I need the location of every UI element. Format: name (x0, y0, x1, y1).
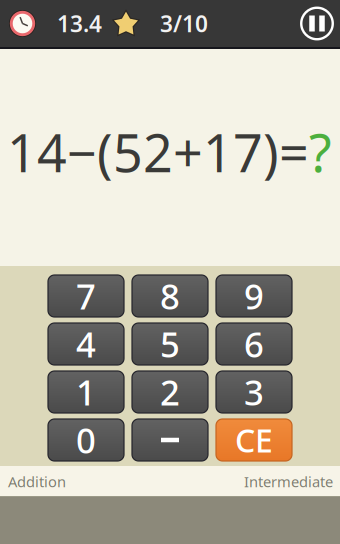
staticText: 8 (160, 273, 180, 319)
button[interactable]: 3 (216, 371, 292, 413)
button[interactable] (132, 419, 208, 461)
button[interactable]: Pause (300, 6, 334, 40)
button[interactable]: 5 (132, 323, 208, 365)
button[interactable]: 2 (132, 371, 208, 413)
button[interactable]: 1 (48, 371, 124, 413)
staticText: 0 (76, 417, 96, 463)
staticText: 3 (244, 369, 264, 415)
staticText: 3/10 (160, 8, 208, 38)
staticText: ? (309, 117, 332, 187)
staticText: 7 (76, 273, 96, 319)
staticText: 6 (244, 321, 264, 367)
staticText: 1 (76, 369, 96, 415)
staticText: 5 (160, 321, 180, 367)
staticText: 14−(52+17)= (7, 117, 309, 187)
button[interactable]: 0 (48, 419, 124, 461)
staticText: Addition (8, 472, 66, 491)
staticText: CE (235, 419, 273, 461)
button[interactable]: CE (216, 419, 292, 461)
button[interactable]: 9 (216, 275, 292, 317)
button[interactable]: 4 (48, 323, 124, 365)
button[interactable]: 8 (132, 275, 208, 317)
button[interactable]: 6 (216, 323, 292, 365)
staticText: 9 (244, 273, 264, 319)
staticText: 4 (76, 321, 96, 367)
staticText: Intermediate (244, 472, 333, 491)
button[interactable]: 7 (48, 275, 124, 317)
staticText: 13.4 (57, 8, 102, 38)
staticText: 2 (160, 369, 180, 415)
